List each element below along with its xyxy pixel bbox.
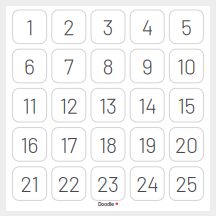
button[interactable]: 11 xyxy=(13,88,47,122)
staticText: 22 xyxy=(58,171,80,196)
button[interactable]: 22 xyxy=(52,167,86,200)
staticText: 10 xyxy=(177,53,196,79)
button[interactable]: 2 xyxy=(52,10,86,44)
staticText: 1 xyxy=(26,14,33,40)
button[interactable]: 23 xyxy=(91,167,125,200)
button[interactable]: 1 xyxy=(13,10,47,44)
button[interactable]: 20 xyxy=(169,127,203,161)
button[interactable]: 25 xyxy=(169,167,203,200)
button[interactable]: 8 xyxy=(91,49,125,83)
button[interactable]: 16 xyxy=(13,127,47,161)
staticText: 6 xyxy=(24,53,35,79)
button[interactable]: 7 xyxy=(52,49,86,83)
staticText: 12 xyxy=(60,92,78,118)
staticText: 24 xyxy=(136,171,158,196)
staticText: 3 xyxy=(102,14,113,40)
button[interactable]: 5 xyxy=(169,10,203,44)
button[interactable]: 3 xyxy=(91,10,125,44)
button[interactable]: 4 xyxy=(130,10,164,44)
button[interactable]: 17 xyxy=(52,127,86,161)
staticText: 13 xyxy=(99,92,117,118)
staticText: Doodle xyxy=(98,200,114,207)
staticText: 9 xyxy=(142,53,153,79)
staticText: 15 xyxy=(177,92,195,118)
staticText: 23 xyxy=(97,171,119,196)
staticText: 17 xyxy=(60,132,77,157)
button[interactable]: 12 xyxy=(52,88,86,122)
button[interactable]: 19 xyxy=(130,127,164,161)
staticText: 19 xyxy=(138,132,156,157)
button[interactable]: 15 xyxy=(169,88,203,122)
button[interactable]: 6 xyxy=(13,49,47,83)
staticText: 20 xyxy=(175,132,198,157)
staticText: 18 xyxy=(99,132,117,157)
staticText: 5 xyxy=(181,14,192,40)
button[interactable]: 18 xyxy=(91,127,125,161)
staticText: 14 xyxy=(138,92,156,118)
button[interactable]: 24 xyxy=(130,167,164,200)
staticText: 4 xyxy=(142,14,153,40)
button[interactable]: 9 xyxy=(130,49,164,83)
staticText: 8 xyxy=(102,53,113,79)
staticText: 16 xyxy=(21,132,39,157)
button[interactable]: 21 xyxy=(13,167,47,200)
button[interactable]: 10 xyxy=(169,49,203,83)
staticText: 7 xyxy=(64,53,74,79)
button[interactable]: 14 xyxy=(130,88,164,122)
button[interactable]: 13 xyxy=(91,88,125,122)
staticText: 25 xyxy=(175,171,197,196)
staticText: 2 xyxy=(63,14,74,40)
staticText: 11 xyxy=(23,92,37,118)
staticText: 21 xyxy=(21,171,39,196)
